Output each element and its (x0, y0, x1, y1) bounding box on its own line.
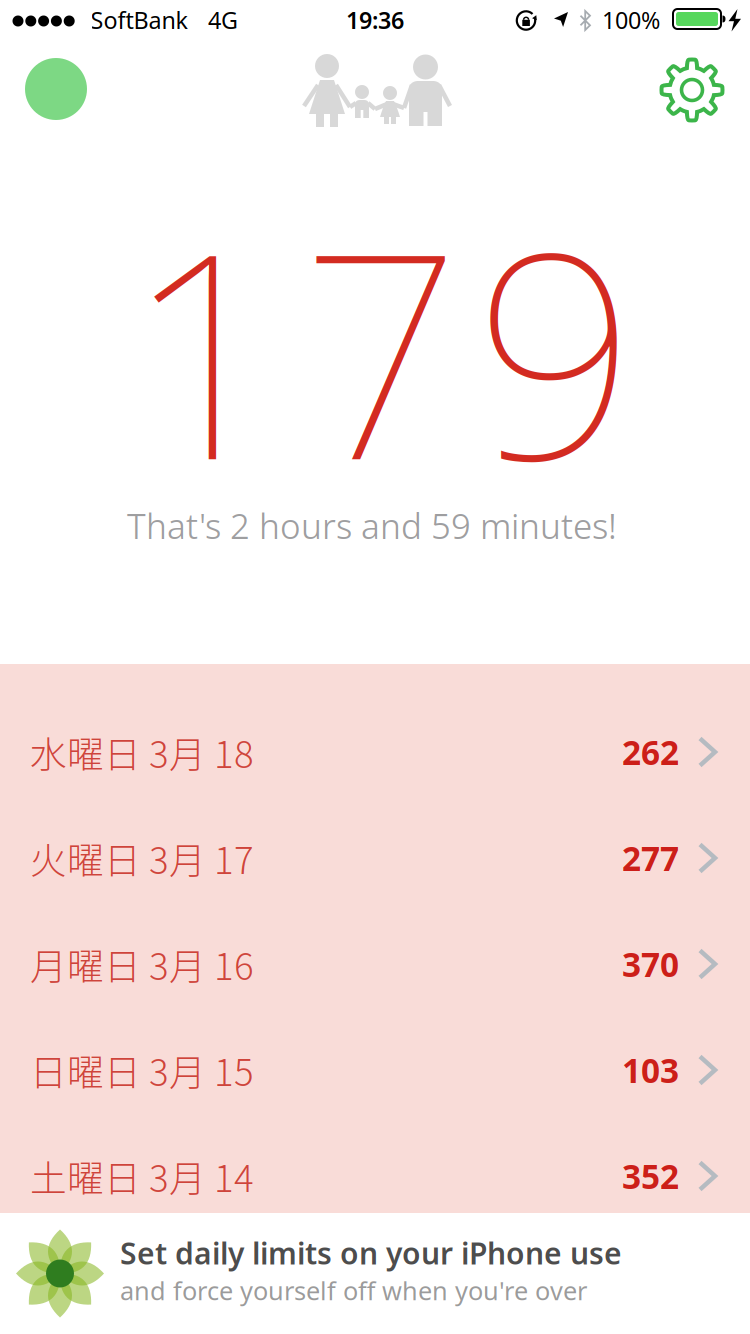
staticText: Set daily limits on your iPhone use (120, 1232, 622, 1273)
staticText: 352 (622, 1153, 679, 1199)
staticText: SoftBank (90, 4, 187, 36)
staticText: That's 2 hours and 59 minutes! (127, 502, 617, 549)
button[interactable]: 土曜日 3月 14 (0, 1123, 750, 1229)
staticText: 水曜日 3月 18 (30, 725, 254, 779)
staticText: 日曜日 3月 15 (30, 1043, 254, 1097)
button[interactable]: Set daily limits on your iPhone use (0, 1213, 750, 1334)
staticText: 103 (622, 1047, 679, 1093)
staticText: 262 (622, 729, 679, 775)
staticText: 火曜日 3月 17 (30, 831, 254, 885)
staticText: 277 (622, 835, 679, 881)
button[interactable]: 水曜日 3月 18 (0, 699, 750, 805)
staticText: 4G (208, 4, 238, 36)
button[interactable]: Status (25, 58, 87, 120)
button[interactable]: 火曜日 3月 17 (0, 805, 750, 911)
staticText: 370 (622, 941, 679, 987)
staticText: 100% (602, 4, 660, 36)
button[interactable]: Settings (659, 57, 725, 123)
staticText: and force yourself off when you're over (120, 1273, 587, 1308)
staticText: 179 (125, 156, 637, 542)
staticText: 土曜日 3月 14 (30, 1149, 254, 1203)
staticText: 19:36 (346, 4, 404, 36)
button[interactable]: 月曜日 3月 16 (0, 911, 750, 1017)
button[interactable]: 日曜日 3月 15 (0, 1017, 750, 1123)
staticText: 月曜日 3月 16 (30, 937, 254, 991)
button[interactable]: Family (276, 54, 452, 138)
